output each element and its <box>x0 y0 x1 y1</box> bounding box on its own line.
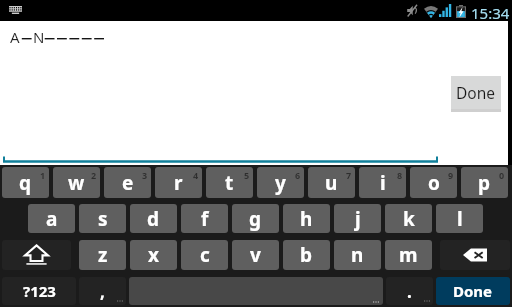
staticText: i <box>380 170 386 196</box>
staticText: o <box>428 170 440 196</box>
button[interactable]: p <box>461 167 508 198</box>
staticText: n <box>351 242 364 268</box>
staticText: g <box>249 206 262 232</box>
staticText: 0 <box>499 169 505 181</box>
staticText: N <box>33 27 45 47</box>
staticText: , <box>100 280 105 303</box>
button[interactable]: l <box>436 204 483 233</box>
button[interactable]: h <box>283 204 330 233</box>
button[interactable]: Comma <box>79 277 126 305</box>
staticText: A <box>10 27 20 47</box>
button[interactable]: n <box>334 240 381 270</box>
button[interactable]: g <box>232 204 279 233</box>
staticText: h <box>300 206 313 232</box>
staticText: c <box>200 242 210 268</box>
staticText: Done <box>456 82 496 103</box>
staticText: 3 <box>142 169 148 181</box>
staticText: w <box>68 170 85 196</box>
button[interactable]: e <box>104 167 151 198</box>
button[interactable]: d <box>130 204 177 233</box>
button[interactable]: a <box>28 204 75 233</box>
button[interactable]: b <box>283 240 330 270</box>
staticText: b <box>300 242 313 268</box>
button[interactable]: t <box>206 167 253 198</box>
button[interactable]: Done <box>451 76 501 109</box>
button[interactable]: Shift <box>2 240 71 270</box>
staticText: p <box>478 170 491 196</box>
button[interactable]: r <box>155 167 202 198</box>
staticText: j <box>355 206 361 232</box>
staticText: 2 <box>91 169 97 181</box>
staticText: 9 <box>448 169 454 181</box>
staticText: l <box>457 206 463 232</box>
staticText: 6 <box>295 169 301 181</box>
staticText: u <box>325 170 338 196</box>
staticText: x <box>148 242 159 268</box>
staticText: 15:34 <box>471 3 510 23</box>
button[interactable]: c <box>181 240 228 270</box>
button[interactable]: o <box>410 167 457 198</box>
button[interactable]: Done <box>436 277 510 305</box>
staticText: e <box>122 170 134 196</box>
button[interactable]: m <box>385 240 432 270</box>
button[interactable]: j <box>334 204 381 233</box>
button[interactable]: w <box>53 167 100 198</box>
staticText: v <box>250 242 261 268</box>
button[interactable]: i <box>359 167 406 198</box>
staticText: . <box>407 280 412 303</box>
button[interactable]: f <box>181 204 228 233</box>
staticText: 5 <box>244 169 250 181</box>
staticText: y <box>275 170 286 196</box>
staticText: a <box>46 206 58 232</box>
button[interactable]: y <box>257 167 304 198</box>
staticText: 7 <box>346 169 352 181</box>
button[interactable]: u <box>308 167 355 198</box>
button[interactable]: z <box>79 240 126 270</box>
staticText: d <box>147 206 160 232</box>
staticText: z <box>98 242 108 268</box>
button[interactable]: v <box>232 240 279 270</box>
staticText: s <box>98 206 108 232</box>
button[interactable]: k <box>385 204 432 233</box>
button[interactable]: Symbols <box>2 277 76 305</box>
button[interactable]: q <box>2 167 49 198</box>
staticText: k <box>403 206 415 232</box>
button[interactable]: Period <box>386 277 433 305</box>
staticText: r <box>174 170 183 196</box>
staticText: ?123 <box>23 281 56 301</box>
staticText: 8 <box>397 169 403 181</box>
staticText: t <box>225 170 234 196</box>
staticText: Done <box>453 281 493 301</box>
staticText: 1 <box>40 169 46 181</box>
button[interactable]: x <box>130 240 177 270</box>
staticText: m <box>399 242 418 268</box>
staticText: f <box>201 206 209 232</box>
button[interactable]: s <box>79 204 126 233</box>
staticText: q <box>19 170 32 196</box>
staticText: 4 <box>193 169 199 181</box>
button[interactable]: Backspace <box>440 240 510 270</box>
